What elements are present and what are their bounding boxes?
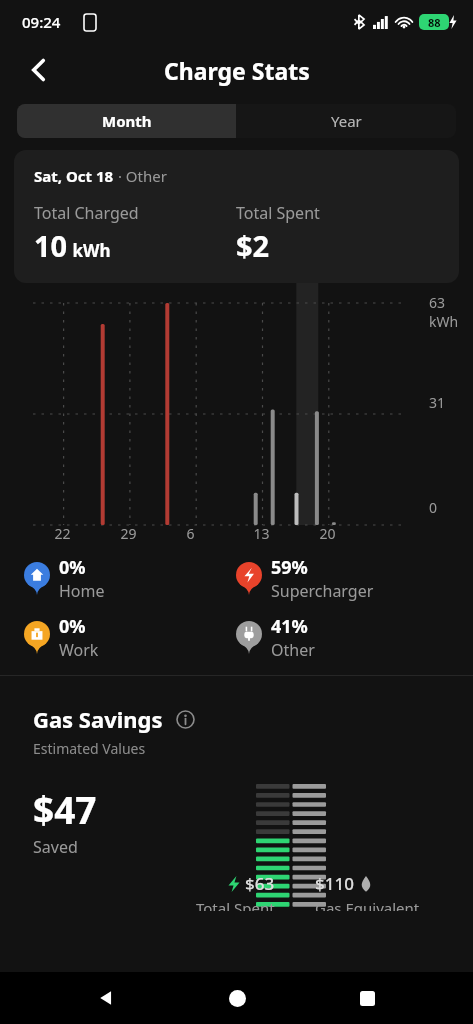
staticText: Saved <box>33 836 78 858</box>
staticText: Supercharger <box>271 580 374 602</box>
staticText: 13 <box>253 524 270 543</box>
staticText: Sat, Oct 18 <box>34 166 114 186</box>
staticText: Total Spent <box>196 898 275 911</box>
staticText: $110 <box>315 872 354 895</box>
staticText: Gas Equivalent <box>315 898 420 911</box>
staticText: 09:24 <box>22 12 61 32</box>
staticText: 22 <box>54 524 71 543</box>
button[interactable]: 41% <box>236 614 449 661</box>
staticText: Total Charged <box>34 202 139 224</box>
staticText: Charge Stats <box>164 55 310 86</box>
staticText: $2 <box>236 226 270 265</box>
staticText: Work <box>59 639 99 661</box>
staticText: 63 <box>429 293 446 312</box>
button[interactable]: 59% <box>236 555 449 602</box>
staticText: 59% <box>271 555 308 580</box>
button[interactable]: 0% <box>24 614 236 661</box>
staticText: 29 <box>120 524 137 543</box>
staticText: 41% <box>271 614 308 639</box>
staticText: Other <box>271 639 315 661</box>
button[interactable]: Recents <box>343 974 391 1022</box>
button[interactable]: Back <box>82 974 130 1022</box>
staticText: 31 <box>429 393 446 412</box>
staticText: Home <box>59 580 105 602</box>
button[interactable]: Month <box>17 104 236 138</box>
staticText: Year <box>331 111 362 131</box>
staticText: $63 <box>245 872 275 895</box>
staticText: · Other <box>114 166 167 186</box>
staticText: 6 <box>186 524 195 543</box>
staticText: Month <box>102 111 152 131</box>
staticText: kWh <box>68 239 111 262</box>
staticText: Gas Savings <box>33 704 163 734</box>
button[interactable]: 0% <box>24 555 236 602</box>
button[interactable]: Back <box>18 50 58 90</box>
button[interactable]: Information <box>173 707 197 731</box>
staticText: 10 <box>34 226 68 265</box>
button[interactable]: Home <box>213 974 261 1022</box>
staticText: Estimated Values <box>33 739 146 758</box>
staticText: 88 <box>428 15 441 30</box>
staticText: 20 <box>319 524 336 543</box>
button[interactable]: Year <box>236 104 456 138</box>
staticText: 0 <box>429 498 438 517</box>
staticText: 0% <box>59 614 86 639</box>
staticText: Total Spent <box>236 202 320 224</box>
staticText: $47 <box>33 784 97 834</box>
staticText: 0% <box>59 555 86 580</box>
staticText: kWh <box>429 312 459 331</box>
